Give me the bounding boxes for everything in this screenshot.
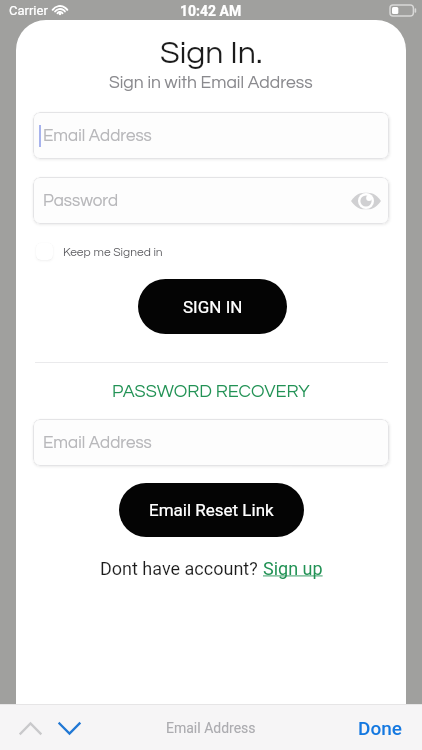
- staticText: SIGN IN: [183, 297, 243, 317]
- button[interactable]: Email Address: [33, 112, 389, 159]
- staticText: Sign in with Email Address: [109, 74, 313, 92]
- button[interactable]: Password: [33, 177, 389, 224]
- staticText: Carrier: [9, 3, 48, 18]
- button[interactable]: Email Reset Link: [119, 483, 304, 537]
- staticText: Password: [43, 192, 119, 210]
- button[interactable]: Email Address: [33, 419, 389, 466]
- staticText: Sign up: [263, 558, 323, 579]
- button[interactable]: SIGN IN: [138, 279, 287, 334]
- staticText: 10:42 AM: [180, 3, 242, 19]
- staticText: PASSWORD RECOVERY: [112, 382, 310, 401]
- button[interactable]: Previous field: [14, 712, 46, 744]
- staticText: Keep me Signed in: [63, 246, 163, 258]
- button[interactable]: Sign up: [263, 558, 323, 579]
- button[interactable]: Show password: [351, 186, 381, 216]
- staticText: Email Address: [43, 434, 152, 452]
- button[interactable]: Done: [344, 709, 422, 747]
- button[interactable]: Next field: [53, 712, 85, 744]
- staticText: Sign In.: [160, 37, 263, 70]
- staticText: Email Address: [166, 720, 256, 736]
- staticText: Email Address: [43, 127, 152, 145]
- staticText: Done: [358, 717, 402, 739]
- staticText: Dont have account?: [100, 558, 263, 579]
- staticText: Email Reset Link: [149, 500, 274, 520]
- button[interactable]: Keep me Signed in: [32, 239, 169, 264]
